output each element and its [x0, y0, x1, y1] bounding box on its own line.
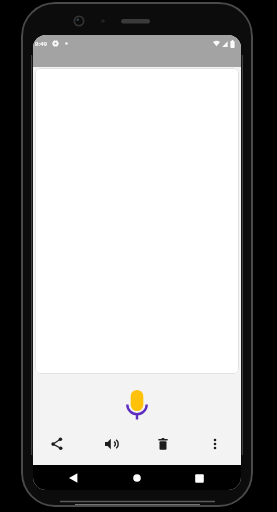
button[interactable]: [85, 436, 137, 451]
button[interactable]: [192, 471, 206, 485]
button[interactable]: [137, 436, 189, 451]
button[interactable]: [33, 436, 85, 451]
staticText: 9:49: [35, 40, 47, 48]
button[interactable]: [122, 386, 152, 424]
button[interactable]: [35, 68, 239, 374]
button[interactable]: [66, 471, 80, 485]
button[interactable]: [189, 436, 241, 451]
button[interactable]: [130, 471, 144, 485]
